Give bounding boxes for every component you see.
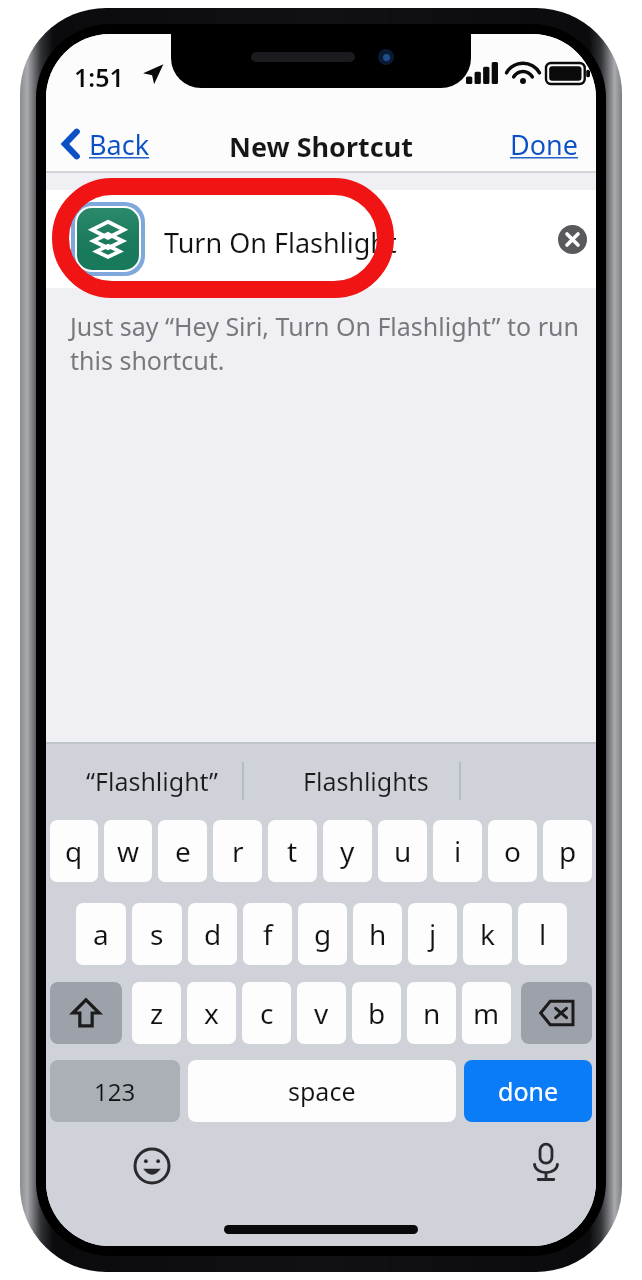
button[interactable]: done — [464, 1060, 592, 1122]
staticText: q — [65, 832, 83, 870]
staticText: v — [314, 994, 329, 1032]
staticText: s — [150, 915, 164, 953]
button[interactable]: w — [104, 820, 152, 882]
staticText: “Flashlight” — [86, 764, 219, 798]
button[interactable]: v — [297, 982, 346, 1044]
button[interactable]: Backspace — [521, 982, 592, 1044]
button[interactable]: “Flashlight” — [62, 742, 242, 820]
staticText: w — [117, 832, 140, 870]
staticText: h — [369, 915, 387, 953]
button[interactable]: k — [463, 903, 512, 965]
button[interactable]: h — [353, 903, 402, 965]
button[interactable]: m — [462, 982, 511, 1044]
staticText: o — [504, 832, 521, 870]
staticText: z — [150, 994, 164, 1032]
button[interactable]: Turn On Flashlight — [46, 190, 596, 288]
button[interactable]: t — [268, 820, 317, 882]
staticText: Back — [89, 126, 150, 163]
button[interactable]: Flashlights — [276, 742, 456, 820]
button[interactable]: Shift — [50, 982, 122, 1044]
staticText: i — [454, 832, 462, 870]
staticText: space — [288, 1074, 356, 1108]
staticText: u — [394, 832, 412, 870]
staticText: d — [204, 915, 222, 953]
button[interactable]: i — [433, 820, 482, 882]
button[interactable]: Emoji keyboard — [124, 1138, 180, 1194]
button[interactable]: 123 — [50, 1060, 180, 1122]
button[interactable]: Remove action — [551, 218, 593, 260]
button[interactable]: o — [488, 820, 537, 882]
button[interactable]: d — [188, 903, 237, 965]
staticText: Flashlights — [303, 764, 429, 798]
button[interactable]: s — [132, 903, 182, 965]
staticText: a — [93, 915, 109, 953]
staticText: l — [539, 915, 547, 953]
staticText: r — [232, 832, 244, 870]
button[interactable]: c — [242, 982, 291, 1044]
staticText: g — [314, 915, 332, 953]
staticText: y — [340, 832, 355, 870]
button[interactable]: n — [407, 982, 456, 1044]
button[interactable]: y — [323, 820, 372, 882]
staticText: k — [480, 915, 495, 953]
button[interactable]: b — [352, 982, 401, 1044]
button[interactable]: a — [76, 903, 126, 965]
staticText: c — [260, 994, 274, 1032]
button[interactable]: g — [298, 903, 347, 965]
button[interactable]: f — [243, 903, 292, 965]
button[interactable]: e — [158, 820, 207, 882]
staticText: e — [175, 832, 191, 870]
staticText: p — [559, 832, 577, 870]
staticText: Just say “Hey Siri, Turn On Flashlight” … — [70, 309, 580, 377]
staticText: 1:51 — [74, 60, 124, 94]
staticText: b — [368, 994, 386, 1032]
staticText: done — [498, 1074, 559, 1108]
staticText: Done — [510, 126, 578, 163]
staticText: m — [473, 994, 500, 1032]
button[interactable]: r — [213, 820, 262, 882]
button[interactable]: j — [408, 903, 457, 965]
staticText: x — [204, 994, 219, 1032]
staticText: New Shortcut — [46, 128, 596, 165]
staticText: j — [429, 915, 437, 953]
staticText: f — [263, 915, 273, 953]
staticText: t — [287, 832, 298, 870]
staticText: Turn On Flashlight — [164, 224, 397, 261]
button[interactable]: space — [188, 1060, 456, 1122]
button[interactable]: q — [50, 820, 98, 882]
button[interactable]: u — [378, 820, 427, 882]
button[interactable]: z — [132, 982, 181, 1044]
button[interactable]: x — [187, 982, 236, 1044]
button[interactable]: Done — [500, 122, 588, 166]
button[interactable]: Back — [56, 122, 156, 166]
staticText: 123 — [94, 1075, 136, 1108]
staticText: n — [423, 994, 441, 1032]
button[interactable]: l — [518, 903, 567, 965]
button[interactable]: p — [543, 820, 592, 882]
button[interactable]: Dictation — [518, 1134, 574, 1190]
